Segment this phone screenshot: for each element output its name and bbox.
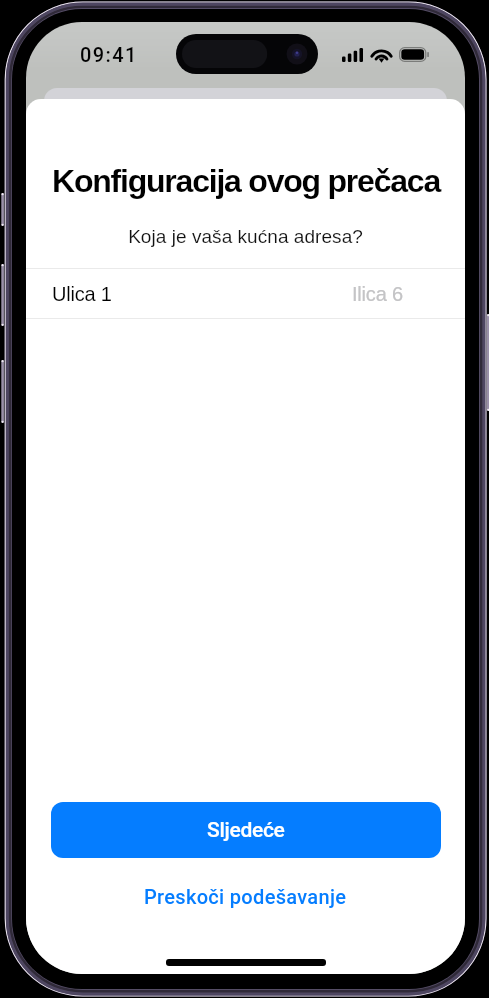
other: Battery full [399, 47, 430, 62]
staticText: 09:41 [80, 43, 138, 66]
button[interactable]: Sljedeće [51, 802, 441, 858]
staticText: Ilica 6 [352, 283, 403, 305]
staticText: Konfiguracija ovog prečaca [52, 163, 440, 199]
staticText: Koja je vaša kućna adresa? [128, 226, 363, 247]
other: Wi-Fi [372, 48, 391, 62]
other: Cellular signal [342, 48, 363, 62]
staticText: Preskoči podešavanje [144, 885, 347, 908]
button[interactable]: Ulica 1 [26, 269, 465, 318]
staticText: Sljedeće [207, 818, 285, 843]
button[interactable]: Preskoči podešavanje [26, 876, 465, 916]
staticText: Ulica 1 [52, 283, 112, 305]
